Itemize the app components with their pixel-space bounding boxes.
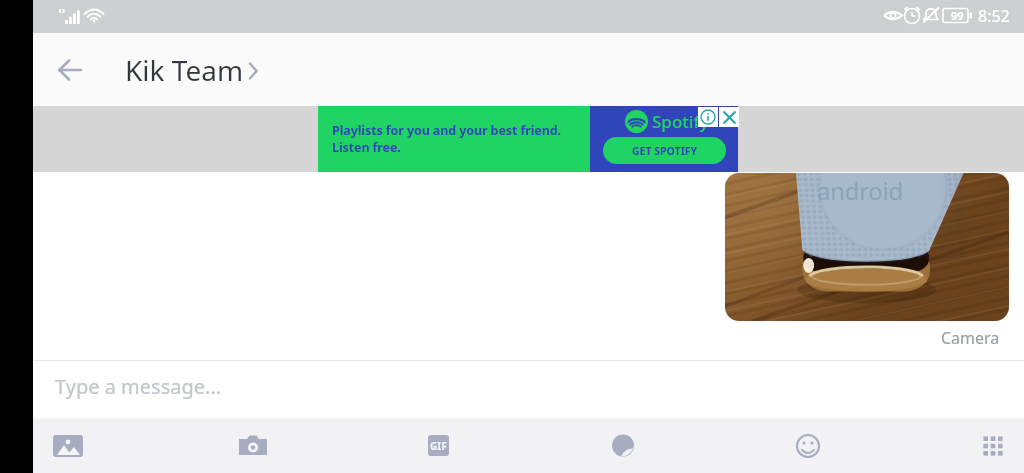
staticText: android (817, 174, 903, 207)
button[interactable]: Back (50, 50, 90, 90)
button[interactable]: GIF (417, 418, 459, 473)
staticText: Listen free. (332, 139, 401, 156)
button[interactable]: GET SPOTIFY (603, 137, 726, 164)
button[interactable]: Kik Team (125, 51, 264, 89)
button[interactable]: Ad info (698, 107, 718, 127)
staticText: Camera (941, 327, 1000, 349)
staticText: Kik Team (125, 51, 244, 89)
button[interactable]: Emoji (787, 418, 829, 473)
button[interactable]: Close ad (719, 107, 739, 127)
staticText: Spotify (652, 110, 709, 133)
button[interactable]: Stickers (602, 418, 644, 473)
staticText: 99 (951, 8, 964, 23)
staticText: GIF (430, 439, 447, 453)
button[interactable]: Photo from Camera (725, 173, 1009, 321)
button[interactable]: Gallery (47, 418, 89, 473)
button[interactable]: Type a message... (33, 361, 1024, 418)
staticText: Playlists for you and your best friend. (332, 122, 561, 139)
button[interactable]: Apps (972, 418, 1014, 473)
staticText: GET SPOTIFY (632, 144, 698, 158)
button[interactable]: Camera (232, 418, 274, 473)
staticText: 8:52 (978, 5, 1010, 27)
staticText: Type a message... (55, 373, 222, 400)
